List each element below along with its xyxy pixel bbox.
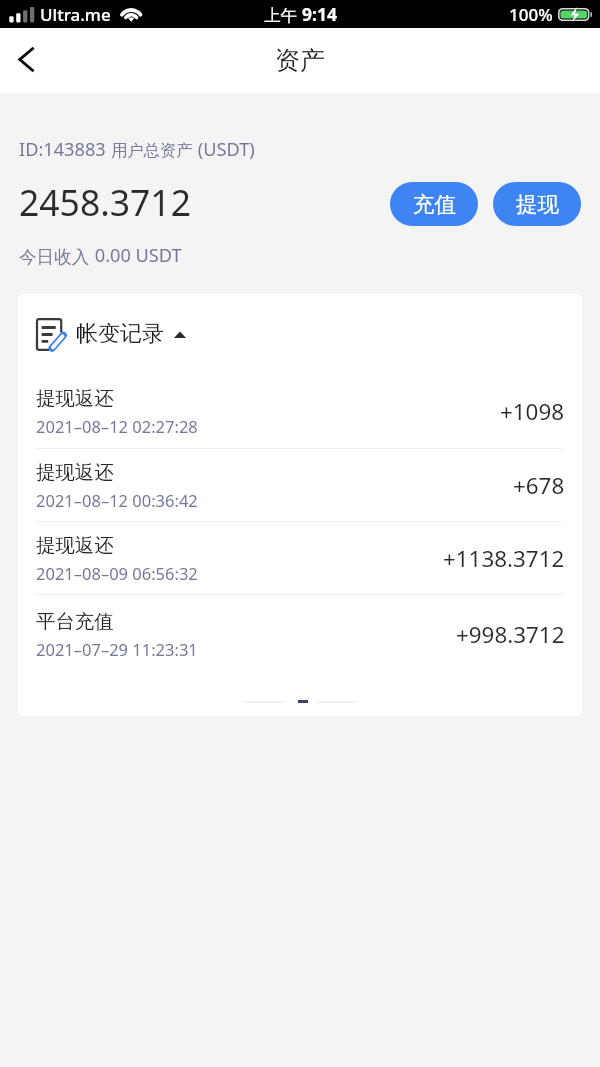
staticText: ID:143883 [19, 137, 111, 162]
staticText: (USDT) [193, 137, 255, 162]
button[interactable]: 平台充值 [18, 595, 582, 674]
button[interactable]: 充值 [390, 182, 478, 226]
staticText: 2458.3712 [19, 178, 191, 226]
button[interactable]: 提现 [493, 182, 581, 226]
staticText: 平台充值 [36, 609, 114, 633]
staticText: 帐变记录 [76, 320, 164, 348]
staticText: Ultra.me [40, 3, 111, 26]
staticText: +1138.3712 [443, 543, 565, 574]
button[interactable]: 帐变记录 [18, 294, 582, 374]
staticText: 2021–07–29 11:23:31 [36, 638, 198, 660]
staticText: 用户总资产 [111, 140, 193, 161]
button[interactable]: 提现返还 [18, 522, 582, 595]
staticText: +998.3712 [456, 619, 565, 650]
button[interactable]: Back [0, 35, 48, 87]
staticText: 今日收入 [19, 246, 90, 268]
staticText: 2021–08–09 06:56:32 [36, 562, 198, 584]
staticText: 上午 [264, 3, 302, 26]
staticText: 2021–08–12 00:36:42 [36, 489, 198, 511]
staticText: 提现返还 [36, 533, 114, 557]
staticText: +678 [513, 470, 565, 501]
staticText: +1098 [500, 396, 565, 427]
staticText: 100% [509, 3, 553, 26]
staticText: 充值 [413, 191, 456, 218]
button[interactable]: 提现返还 [18, 374, 582, 449]
staticText: 2021–08–12 02:27:28 [36, 415, 198, 437]
staticText: 提现返还 [36, 386, 114, 410]
staticText: 0.00 USDT [90, 243, 182, 268]
staticText: 提现 [516, 191, 559, 218]
staticText: 资产 [275, 45, 325, 76]
staticText: 9:14 [302, 2, 337, 26]
button[interactable]: 提现返还 [18, 449, 582, 522]
staticText: 提现返还 [36, 460, 114, 484]
